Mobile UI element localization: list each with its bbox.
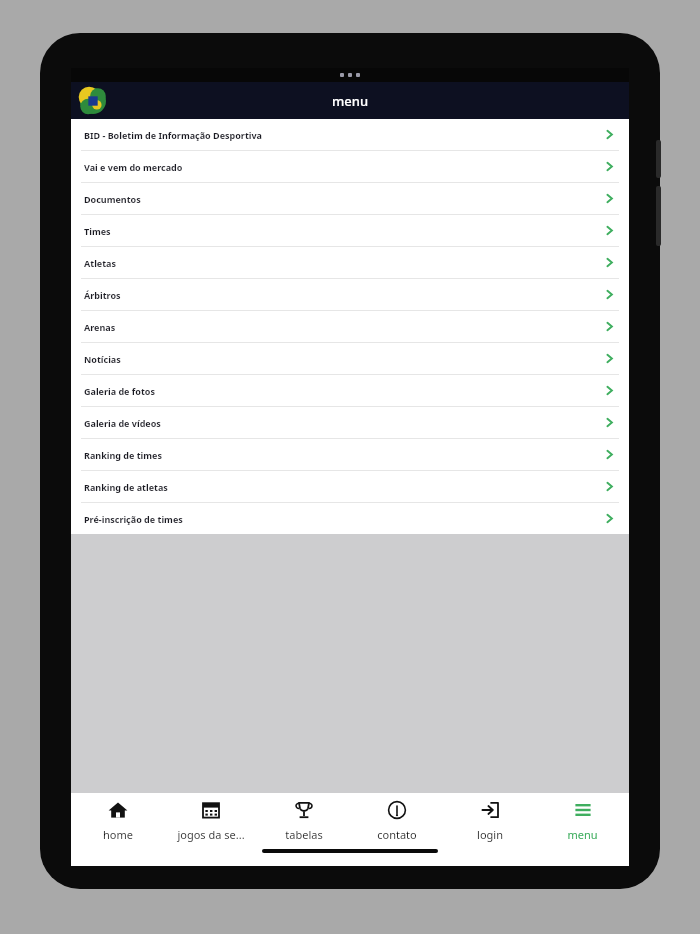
button[interactable]: Árbitros xyxy=(71,279,629,310)
button[interactable]: Arenas xyxy=(71,311,629,342)
staticText: jogos da se... xyxy=(177,827,245,842)
button[interactable]: Galeria de vídeos xyxy=(71,407,629,438)
staticText: Galeria de vídeos xyxy=(84,417,603,429)
button[interactable]: Ranking de times xyxy=(71,439,629,470)
staticText: home xyxy=(103,827,133,842)
button[interactable]: login xyxy=(443,793,536,849)
button[interactable]: BID - Boletim de Informação Desportiva xyxy=(71,119,629,150)
staticText: Vai e vem do mercado xyxy=(84,161,603,173)
staticText: Atletas xyxy=(84,257,603,269)
button[interactable]: Galeria de fotos xyxy=(71,375,629,406)
button[interactable]: Times xyxy=(71,215,629,246)
button[interactable]: Ranking de atletas xyxy=(71,471,629,502)
staticText: menu xyxy=(332,92,369,110)
staticText: Ranking de times xyxy=(84,449,603,461)
button[interactable]: Vai e vem do mercado xyxy=(71,151,629,182)
button[interactable]: jogos da se... xyxy=(164,793,257,849)
button[interactable]: home xyxy=(71,793,164,849)
staticText: BID - Boletim de Informação Desportiva xyxy=(84,129,603,141)
button[interactable]: Atletas xyxy=(71,247,629,278)
button[interactable]: Logo xyxy=(80,88,106,114)
staticText: Pré-inscrição de times xyxy=(84,513,603,525)
button[interactable]: Pré-inscrição de times xyxy=(71,503,629,534)
button[interactable]: menu xyxy=(536,793,629,849)
staticText: Galeria de fotos xyxy=(84,385,603,397)
staticText: login xyxy=(477,827,503,842)
button[interactable]: tabelas xyxy=(257,793,350,849)
staticText: Notícias xyxy=(84,353,603,365)
button[interactable]: contato xyxy=(350,793,443,849)
staticText: Arenas xyxy=(84,321,603,333)
staticText: Documentos xyxy=(84,193,603,205)
staticText: Ranking de atletas xyxy=(84,481,603,493)
button[interactable]: Documentos xyxy=(71,183,629,214)
staticText: Times xyxy=(84,225,603,237)
staticText: contato xyxy=(377,827,417,842)
staticText: tabelas xyxy=(285,827,323,842)
button[interactable]: Notícias xyxy=(71,343,629,374)
staticText: menu xyxy=(567,827,598,842)
staticText: Árbitros xyxy=(84,289,603,301)
